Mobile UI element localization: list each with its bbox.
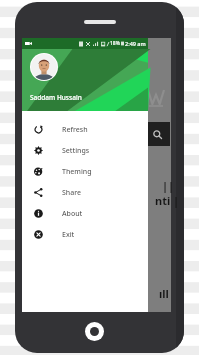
button[interactable]: Theming [22, 161, 148, 182]
staticText: Exit [62, 230, 75, 240]
button[interactable]: Refresh [22, 119, 148, 140]
button[interactable]: Home [85, 322, 104, 341]
button[interactable]: Search [144, 122, 170, 146]
staticText: Theming [62, 167, 92, 177]
staticText: 2:49 am [125, 40, 146, 47]
staticText: 18% [110, 40, 120, 47]
staticText: || [162, 178, 175, 193]
button[interactable]: About [22, 203, 148, 224]
staticText: Share [62, 188, 82, 198]
staticText: ıll [159, 286, 169, 301]
staticText: About [62, 209, 83, 219]
staticText: Refresh [62, 125, 88, 135]
button[interactable]: Settings [22, 140, 148, 161]
staticText: Settings [62, 146, 90, 156]
staticText: nti | [155, 193, 180, 208]
button[interactable]: Exit [22, 224, 148, 245]
button[interactable]: Share [22, 182, 148, 203]
staticText: Saddam Hussain [30, 93, 82, 102]
